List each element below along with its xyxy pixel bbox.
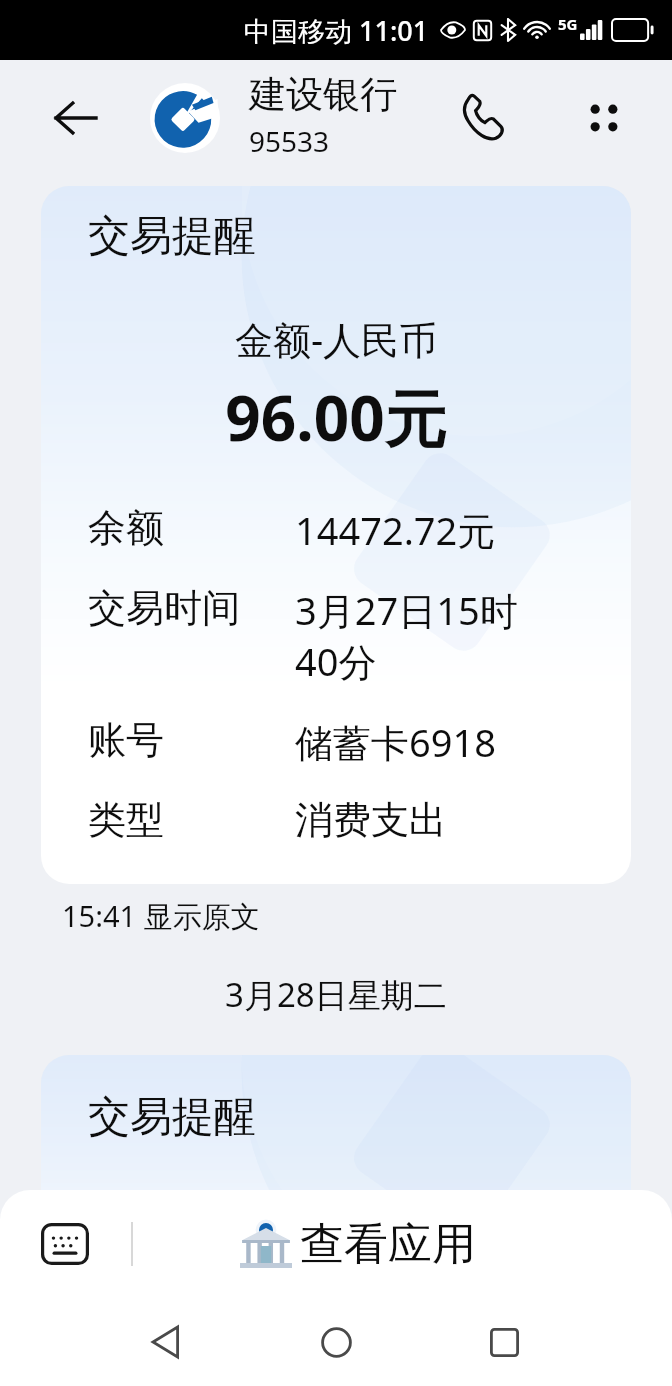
staticText: 账号 (88, 716, 164, 764)
staticText: 5G (558, 14, 578, 34)
button[interactable]: Keyboard (28, 1207, 102, 1281)
staticText: 交易提醒 (88, 210, 256, 263)
staticText: 储蓄卡6918 (295, 716, 496, 768)
staticText: 类型 (88, 796, 164, 844)
button[interactable]: Call (452, 86, 516, 150)
button[interactable]: More options (572, 86, 636, 150)
button[interactable]: 交易提醒 (41, 186, 631, 884)
staticText: 96.00元 (41, 375, 631, 460)
staticText: 14472.72元 (295, 504, 496, 556)
staticText: 金额-人民币 (41, 313, 631, 365)
staticText: 中国移动 11:01 (244, 12, 429, 49)
button[interactable]: Recent apps (476, 1314, 532, 1370)
button[interactable]: 查看应用 (224, 1209, 492, 1280)
staticText: 交易时间 (88, 584, 240, 632)
staticText: 建设银行 (249, 71, 397, 118)
staticText: 3月27日15时 40分 (295, 584, 518, 688)
staticText: 95533 (249, 122, 330, 160)
button[interactable]: Back (48, 90, 104, 146)
button[interactable]: 交易提醒 (41, 1055, 631, 1215)
staticText: 余额 (88, 504, 164, 552)
staticText: 消费支出 (295, 796, 447, 844)
staticText: 3月28日星期二 (225, 972, 447, 1017)
staticText: 查看应用 (300, 1217, 476, 1272)
button[interactable]: Home (308, 1314, 364, 1370)
staticText: 15:41 显示原文 (62, 896, 260, 936)
staticText: 交易提醒 (88, 1091, 256, 1144)
button[interactable]: Back (140, 1314, 196, 1370)
